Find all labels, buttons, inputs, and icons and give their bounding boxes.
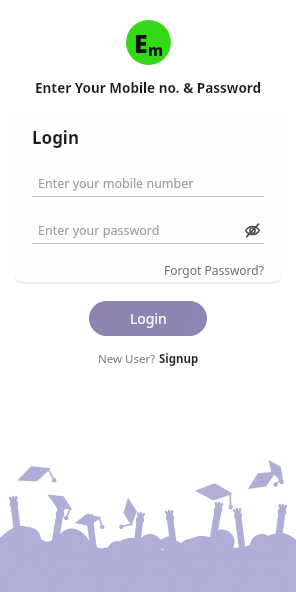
button[interactable]: Show password (240, 218, 264, 242)
staticText: Enter Your Mobile no. & Password (35, 79, 262, 97)
staticText: E (134, 26, 148, 60)
button[interactable]: Em logo (126, 20, 171, 65)
staticText: Login (130, 309, 167, 328)
button[interactable]: Signup (159, 351, 199, 367)
staticText: Signup (159, 351, 199, 367)
staticText: m (148, 40, 164, 60)
button[interactable]: Enter your mobile number (32, 170, 264, 196)
staticText: Enter your mobile number (38, 175, 194, 192)
button[interactable]: Login (89, 301, 207, 336)
button[interactable]: Forgot Password? (164, 262, 264, 278)
staticText: Login (32, 126, 80, 149)
staticText: New User? (98, 351, 159, 367)
staticText: Forgot Password? (164, 262, 264, 278)
button[interactable]: Enter your password (32, 217, 264, 243)
staticText: Enter your password (38, 222, 160, 239)
